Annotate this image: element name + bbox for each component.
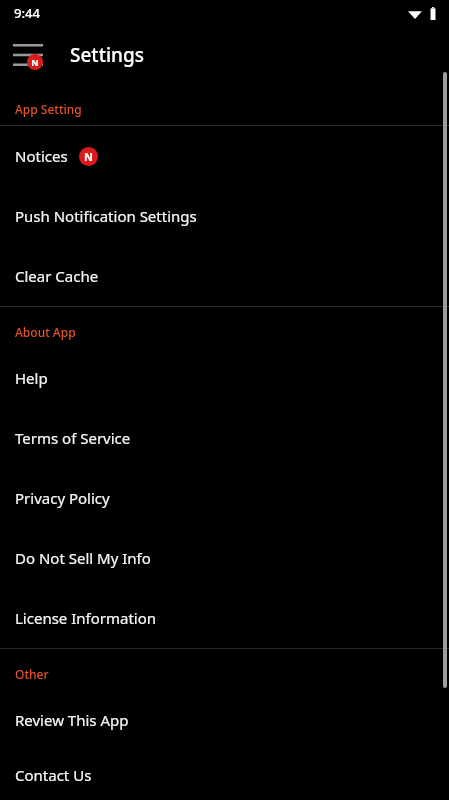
- staticText: Settings: [70, 42, 144, 68]
- staticText: Other: [15, 666, 49, 682]
- button[interactable]: License Information: [0, 588, 449, 648]
- staticText: 9:44: [14, 4, 40, 22]
- button[interactable]: Terms of Service: [0, 408, 449, 468]
- button[interactable]: Help: [0, 348, 449, 408]
- button[interactable]: Notices: [0, 126, 449, 186]
- button[interactable]: Clear Cache: [0, 246, 449, 306]
- staticText: N: [31, 56, 39, 68]
- button[interactable]: Contact Us: [0, 750, 449, 800]
- staticText: Contact Us: [15, 765, 92, 785]
- button[interactable]: Do Not Sell My Info: [0, 528, 449, 588]
- staticText: App Setting: [15, 101, 82, 117]
- staticText: Notices: [15, 146, 68, 166]
- button[interactable]: Open navigation menu: [6, 33, 50, 77]
- button[interactable]: Push Notification Settings: [0, 186, 449, 246]
- staticText: Review This App: [15, 710, 129, 730]
- staticText: License Information: [15, 608, 157, 628]
- staticText: Clear Cache: [15, 266, 99, 286]
- staticText: Privacy Policy: [15, 488, 110, 508]
- staticText: About App: [15, 324, 76, 340]
- staticText: Push Notification Settings: [15, 206, 197, 226]
- button[interactable]: Review This App: [0, 690, 449, 750]
- button[interactable]: Privacy Policy: [0, 468, 449, 528]
- staticText: Terms of Service: [15, 428, 131, 448]
- staticText: N: [84, 149, 93, 164]
- staticText: Do Not Sell My Info: [15, 548, 151, 568]
- staticText: Help: [15, 368, 48, 388]
